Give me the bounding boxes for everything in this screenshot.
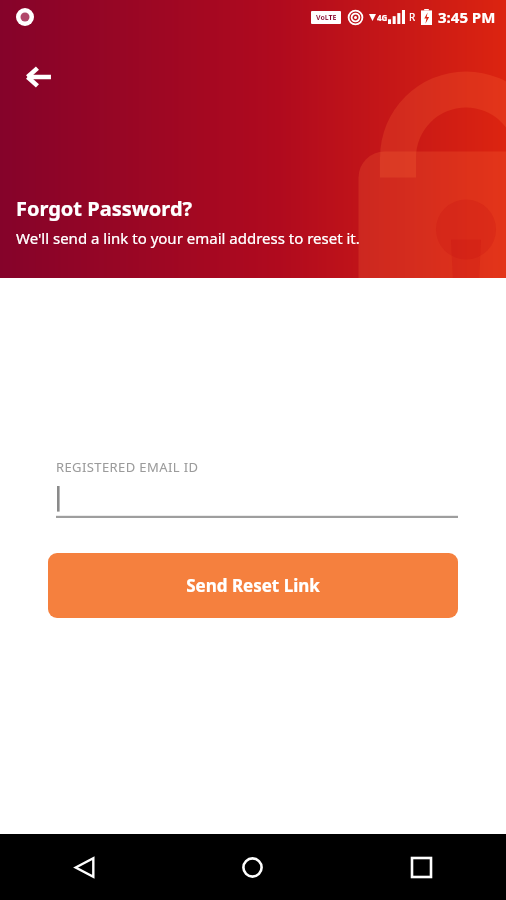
button[interactable]: Back: [14, 52, 64, 102]
staticText: Forgot Password?: [16, 195, 193, 222]
button[interactable]: [56, 486, 458, 518]
staticText: R: [409, 10, 416, 24]
staticText: VoLTE: [316, 13, 337, 23]
staticText: 4G: [377, 12, 388, 23]
staticText: Send Reset Link: [186, 574, 320, 597]
button[interactable]: Send Reset Link: [48, 553, 458, 618]
staticText: We'll send a link to your email address …: [16, 228, 360, 248]
staticText: 3:45 PM: [438, 7, 496, 27]
staticText: REGISTERED EMAIL ID: [56, 458, 199, 476]
button[interactable]: Back: [0, 834, 168, 900]
button[interactable]: Recent apps: [337, 834, 506, 900]
button[interactable]: Home: [168, 834, 337, 900]
